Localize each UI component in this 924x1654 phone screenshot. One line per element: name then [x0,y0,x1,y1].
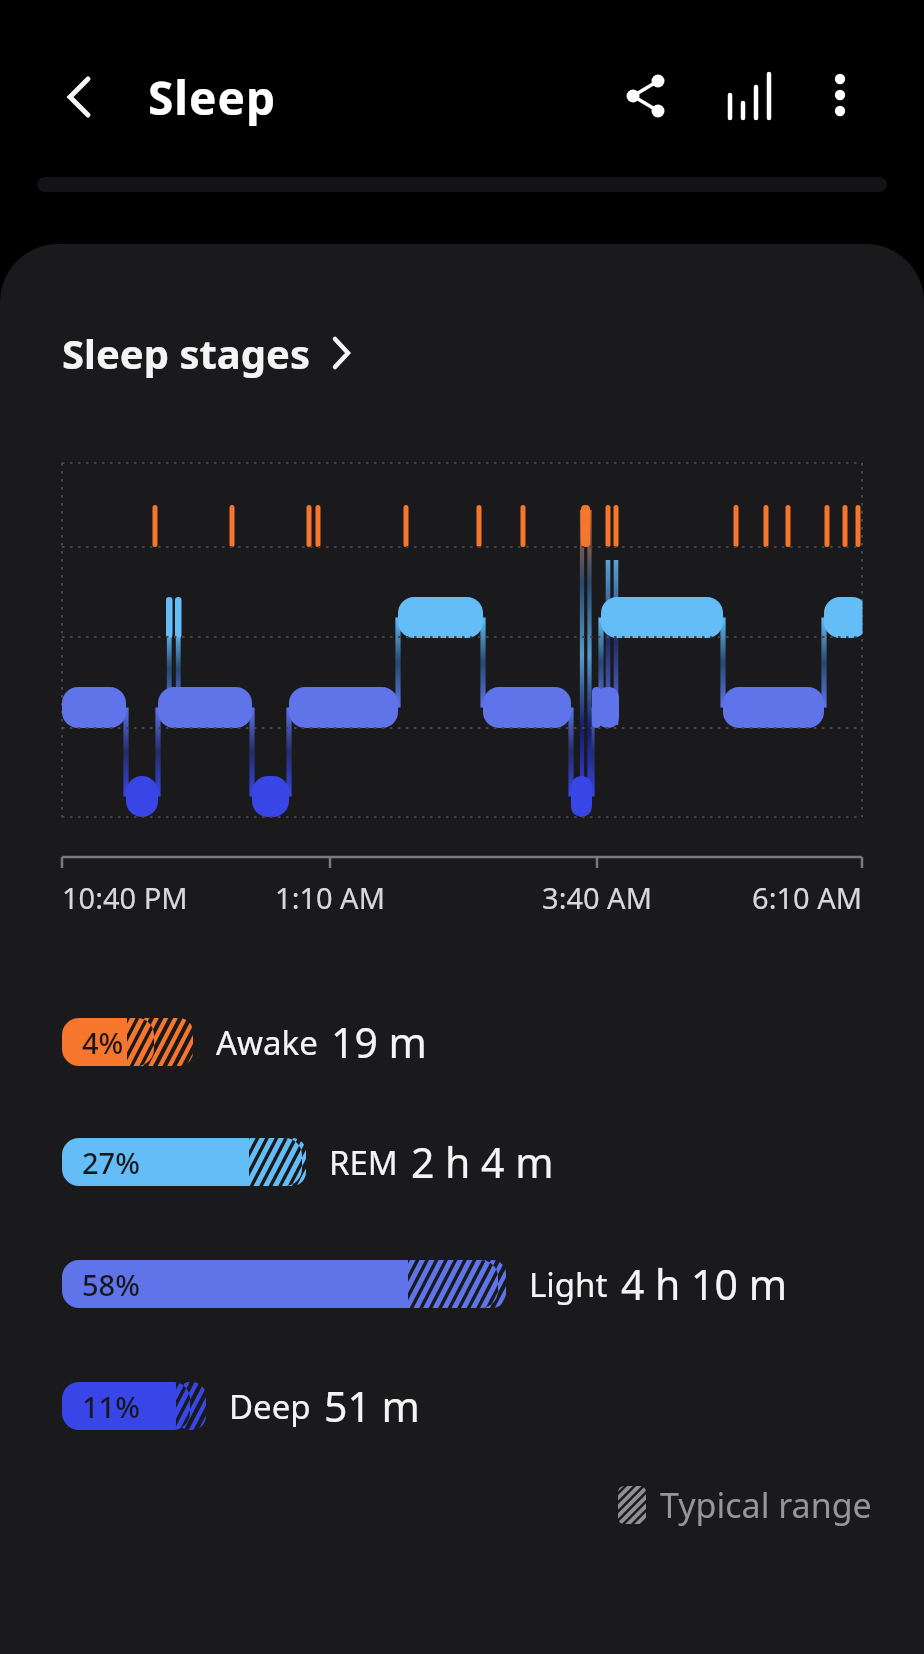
button[interactable]: 11% [62,1378,420,1434]
staticText: Sleep stages [62,326,311,380]
button[interactable] [612,60,682,130]
button[interactable]: Typical range [618,1482,872,1528]
button[interactable]: 4% [62,1014,427,1070]
button[interactable]: Sleep stages [62,326,351,380]
button[interactable]: 58% [62,1256,788,1312]
staticText: 58% [82,1265,140,1304]
button[interactable] [44,62,114,132]
staticText: Deep [229,1384,311,1429]
staticText: Sleep [148,66,277,129]
staticText: 11% [82,1387,140,1426]
staticText: 4% [82,1023,124,1062]
button[interactable] [715,60,785,130]
staticText: 1:10 AM [230,878,430,917]
staticText: 2 h 4 m [411,1134,554,1190]
staticText: Typical range [660,1482,872,1528]
staticText: 3:40 AM [497,878,697,917]
button[interactable]: 27% [62,1134,554,1190]
staticText: Light [529,1262,608,1307]
staticText: 4 h 10 m [621,1256,788,1312]
staticText: 6:10 AM [662,878,862,917]
staticText: 51 m [324,1378,420,1434]
staticText: 10:40 PM [62,878,262,917]
button[interactable] [805,60,875,130]
staticText: Awake [216,1020,318,1065]
staticText: 27% [82,1143,140,1182]
staticText: REM [329,1140,398,1185]
staticText: 19 m [331,1014,427,1070]
